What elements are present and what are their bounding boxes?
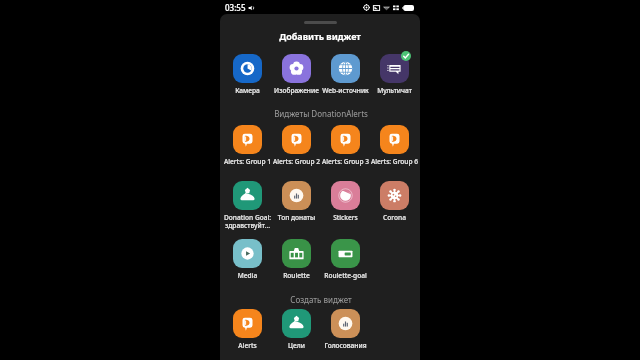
staticText: Media	[223, 271, 272, 280]
staticText: Добавить виджет	[220, 30, 420, 42]
staticText: Топ донаты	[272, 213, 321, 222]
button[interactable]: Alerts: Group 3	[321, 122, 370, 166]
button[interactable]: Roulette-goal	[321, 236, 370, 280]
staticText: Stickers	[321, 213, 370, 222]
button[interactable]: Media	[223, 236, 272, 280]
button[interactable]: Corona	[370, 178, 419, 222]
staticText: Roulette-goal	[321, 271, 370, 280]
staticText: Изображение	[272, 86, 321, 95]
button[interactable]: Цели	[272, 306, 321, 350]
button[interactable]: Изображение	[272, 51, 321, 95]
staticText: Web-источник	[321, 86, 370, 95]
button[interactable]: Камера	[223, 51, 272, 95]
staticText: Alerts: Group 6	[370, 157, 419, 166]
button[interactable]: Alerts	[223, 306, 272, 350]
staticText: Alerts	[223, 341, 272, 350]
staticText: Создать виджет	[223, 294, 419, 305]
staticText: Donation Goal: здравствуйт…	[223, 213, 272, 230]
staticText: Alerts: Group 1	[223, 157, 272, 166]
staticText: 03:55	[225, 2, 246, 13]
button[interactable]: Alerts: Group 1	[223, 122, 272, 166]
button[interactable]: Web-источник	[321, 51, 370, 95]
button[interactable]: Голосования	[321, 306, 370, 350]
staticText: Alerts: Group 3	[321, 157, 370, 166]
staticText: Corona	[370, 213, 419, 222]
staticText: Голосования	[321, 341, 370, 350]
button[interactable]: Donation Goal: здравствуйт…	[223, 178, 272, 230]
button[interactable]: Alerts: Group 6	[370, 122, 419, 166]
staticText: Мультичат	[370, 86, 419, 95]
staticText: Цели	[272, 341, 321, 350]
staticText: Виджеты DonationAlerts	[223, 108, 419, 119]
staticText: Alerts: Group 2	[272, 157, 321, 166]
staticText: Камера	[223, 86, 272, 95]
button[interactable]: Roulette	[272, 236, 321, 280]
button[interactable]: Alerts: Group 2	[272, 122, 321, 166]
button[interactable]: Stickers	[321, 178, 370, 222]
staticText: Roulette	[272, 271, 321, 280]
button[interactable]: Топ донаты	[272, 178, 321, 222]
button[interactable]: Мультичат	[370, 51, 419, 95]
